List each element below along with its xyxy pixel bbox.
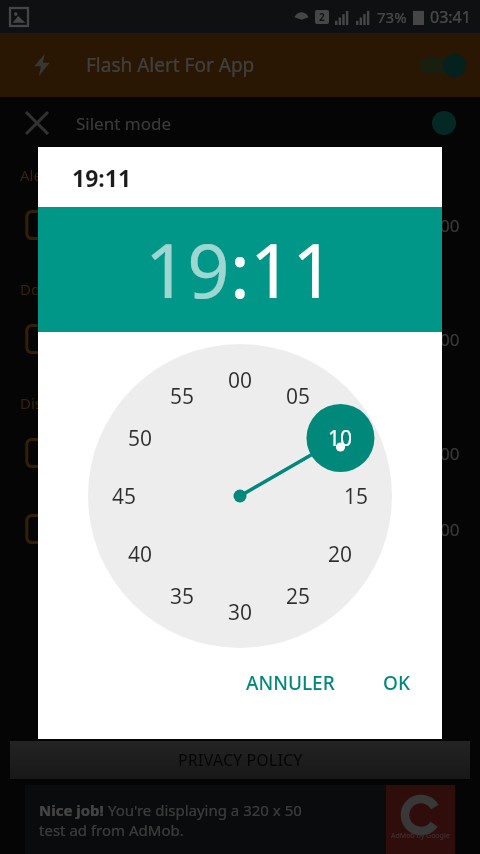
staticText: PRIVACY POLICY: [178, 749, 303, 771]
button[interactable]: 00: [20, 415, 460, 491]
button[interactable]: 20: [318, 532, 362, 576]
button[interactable]: 35: [160, 574, 204, 618]
button[interactable]: 11: [250, 219, 335, 320]
button[interactable]: 10: [318, 416, 362, 460]
staticText: 50: [128, 424, 153, 453]
button[interactable]: Flash: [24, 47, 60, 83]
staticText: 30: [228, 598, 253, 627]
button[interactable]: 55: [160, 374, 204, 418]
staticText: 10: [328, 424, 353, 453]
staticText: 35: [170, 582, 195, 611]
button[interactable]: Nice job!: [25, 785, 455, 854]
staticText: 00: [228, 366, 253, 395]
button[interactable]: PRIVACY POLICY: [10, 741, 470, 779]
staticText: 19: [145, 219, 230, 320]
button[interactable]: Silent mode: [22, 97, 480, 149]
staticText: 55: [170, 382, 195, 411]
staticText: 20: [328, 540, 353, 569]
button[interactable]: 19: [145, 219, 230, 320]
staticText: 15: [344, 482, 369, 511]
staticText: 25: [286, 582, 311, 611]
staticText: AdMob by Google: [391, 831, 450, 841]
button[interactable]: 00: [20, 187, 460, 263]
staticText: ANNULER: [246, 670, 335, 696]
staticText: 40: [128, 540, 153, 569]
button[interactable]: OK: [365, 660, 428, 706]
staticText: You're displaying a 320 x 50: [104, 800, 302, 820]
staticText: Flash Alert For App: [86, 52, 255, 78]
button[interactable]: 45: [102, 474, 146, 518]
staticText: 00: [440, 214, 460, 237]
staticText: 45: [112, 482, 137, 511]
staticText: 11: [250, 219, 335, 320]
staticText: 2: [319, 10, 325, 24]
staticText: 03:41: [430, 6, 471, 28]
button[interactable]: 05: [276, 374, 320, 418]
staticText: 05: [286, 382, 311, 411]
staticText: Do not disturb: [20, 279, 122, 299]
button[interactable]: 40: [118, 532, 162, 576]
staticText: 00: [440, 518, 460, 541]
staticText: 19:11: [72, 162, 132, 193]
button[interactable]: 30: [218, 590, 262, 634]
staticText: 00: [440, 328, 460, 351]
staticText: 00: [440, 442, 460, 465]
staticText: :: [230, 219, 250, 320]
button[interactable]: 00: [20, 301, 460, 377]
button[interactable]: 25: [276, 574, 320, 618]
staticText: 73%: [377, 7, 407, 27]
staticText: Alert Settings: [20, 165, 115, 185]
button[interactable]: 00: [20, 491, 460, 567]
staticText: Nice job!: [39, 800, 104, 820]
button[interactable]: 15: [334, 474, 378, 518]
button[interactable]: 00: [218, 358, 262, 402]
button[interactable]: 50: [118, 416, 162, 460]
staticText: OK: [383, 670, 410, 696]
staticText: Display: [20, 393, 72, 413]
button[interactable]: ANNULER: [230, 660, 351, 706]
button[interactable]: Toggle flash alert: [410, 49, 466, 81]
staticText: test ad from AdMob.: [39, 820, 184, 840]
staticText: Silent mode: [76, 112, 171, 135]
